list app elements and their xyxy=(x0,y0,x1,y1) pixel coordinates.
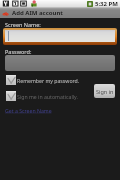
staticText: 5:32 PM xyxy=(95,0,118,7)
button[interactable]: Get a Screen Name xyxy=(5,107,52,114)
staticText: Sign me in automatically. xyxy=(17,93,78,100)
other: AIM xyxy=(2,9,10,17)
staticText: Password: xyxy=(5,48,32,55)
button[interactable] xyxy=(5,55,115,71)
staticText: Add AIM account xyxy=(12,9,63,17)
staticText: Screen Name: xyxy=(5,21,41,28)
staticText: Get a Screen Name xyxy=(5,107,52,114)
staticText: Remember my password. xyxy=(17,77,80,84)
button[interactable]: Sign me in automatically. xyxy=(6,91,78,101)
button[interactable]: Remember my password. xyxy=(6,75,80,85)
button[interactable] xyxy=(3,28,117,45)
staticText: Sign in xyxy=(96,88,114,95)
button[interactable]: Sign in xyxy=(94,84,115,98)
